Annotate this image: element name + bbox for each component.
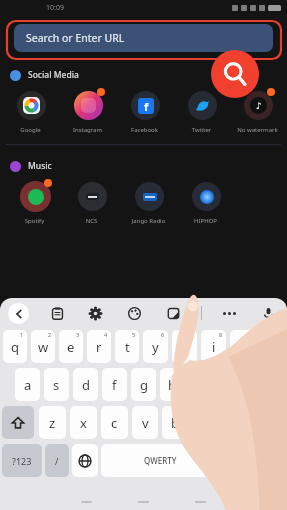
- button[interactable]: QWERTY: [101, 444, 219, 477]
- button[interactable]: t: [115, 330, 139, 363]
- button[interactable]: HIPHOP: [177, 179, 234, 225]
- button[interactable]: z: [39, 406, 66, 439]
- staticText: Instagram: [59, 126, 116, 134]
- staticText: b: [171, 414, 179, 432]
- button[interactable]: /: [45, 444, 69, 477]
- staticText: Jango Radio: [120, 217, 177, 225]
- button[interactable]: Voice input: [257, 302, 279, 324]
- staticText: x: [80, 414, 87, 432]
- button[interactable]: Search: [211, 50, 259, 98]
- button[interactable]: u: [172, 330, 197, 363]
- button[interactable]: b: [162, 406, 188, 439]
- staticText: u: [180, 338, 189, 356]
- staticText: Music: [28, 160, 52, 172]
- staticText: c: [111, 414, 118, 432]
- button[interactable]: Social Media: [10, 66, 287, 84]
- button[interactable]: Resize: [162, 302, 184, 324]
- staticText: Twitter: [173, 126, 230, 134]
- staticText: i: [212, 338, 216, 356]
- button[interactable]: Enter: [251, 444, 285, 477]
- button[interactable]: Music: [10, 157, 287, 175]
- staticText: Search or Enter URL: [26, 31, 125, 45]
- staticText: 5: [132, 331, 136, 338]
- staticText: 0: [277, 331, 281, 338]
- button[interactable]: x: [70, 406, 97, 439]
- button[interactable]: d: [73, 368, 98, 401]
- button[interactable]: NCS: [63, 179, 120, 225]
- staticText: Facebook: [116, 126, 173, 134]
- button[interactable]: Twitter: [173, 88, 230, 134]
- staticText: e: [67, 338, 75, 356]
- staticText: No watermark: [230, 126, 285, 134]
- button[interactable]: Language: [72, 444, 98, 477]
- button[interactable]: Google: [2, 88, 59, 134]
- staticText: a: [24, 376, 32, 394]
- button[interactable]: g: [131, 368, 156, 401]
- button[interactable]: Theme: [123, 302, 145, 324]
- staticText: 3: [76, 331, 80, 338]
- button[interactable]: y: [143, 330, 168, 363]
- button[interactable]: Settings: [84, 302, 106, 324]
- staticText: Social Media: [28, 69, 79, 81]
- button[interactable]: f: [116, 88, 173, 134]
- staticText: Google: [2, 126, 59, 134]
- button[interactable]: Search or Enter URL: [14, 24, 273, 52]
- button[interactable]: c: [101, 406, 128, 439]
- button[interactable]: e: [59, 330, 83, 363]
- staticText: r: [96, 338, 102, 356]
- staticText: 8: [219, 331, 223, 338]
- button[interactable]: r: [87, 330, 111, 363]
- staticText: 2: [48, 331, 52, 338]
- staticText: f: [112, 376, 117, 394]
- staticText: 6: [161, 331, 165, 338]
- button[interactable]: Spotify: [6, 179, 63, 225]
- staticText: z: [49, 414, 56, 432]
- staticText: g: [140, 376, 148, 394]
- staticText: d: [82, 376, 90, 394]
- button[interactable]: o: [230, 330, 255, 363]
- button[interactable]: v: [132, 406, 158, 439]
- button[interactable]: q: [3, 330, 27, 363]
- staticText: w: [38, 338, 49, 356]
- button[interactable]: Shift: [2, 406, 34, 439]
- staticText: 1: [20, 331, 24, 338]
- button[interactable]: p: [259, 330, 284, 363]
- button[interactable]: k: [218, 368, 243, 401]
- button[interactable]: ?123: [2, 444, 42, 477]
- staticText: o: [239, 338, 247, 356]
- button[interactable]: i: [201, 330, 226, 363]
- staticText: v: [142, 414, 149, 432]
- staticText: s: [53, 376, 60, 394]
- button[interactable]: ♪: [230, 88, 285, 134]
- staticText: ?123: [12, 455, 32, 467]
- button[interactable]: w: [31, 330, 55, 363]
- staticText: Spotify: [6, 217, 63, 225]
- button[interactable]: Instagram: [59, 88, 116, 134]
- button[interactable]: a: [15, 368, 40, 401]
- button[interactable]: h: [160, 368, 185, 401]
- staticText: t: [125, 338, 130, 356]
- staticText: 4: [104, 331, 108, 338]
- button[interactable]: f: [102, 368, 127, 401]
- button[interactable]: Clipboard: [46, 302, 68, 324]
- staticText: 7: [190, 331, 194, 338]
- staticText: ♪: [256, 101, 262, 111]
- button[interactable]: Back: [8, 303, 29, 324]
- button[interactable]: More: [218, 302, 240, 324]
- staticText: q: [11, 338, 19, 356]
- button[interactable]: s: [44, 368, 69, 401]
- button[interactable]: Jango Radio: [120, 179, 177, 225]
